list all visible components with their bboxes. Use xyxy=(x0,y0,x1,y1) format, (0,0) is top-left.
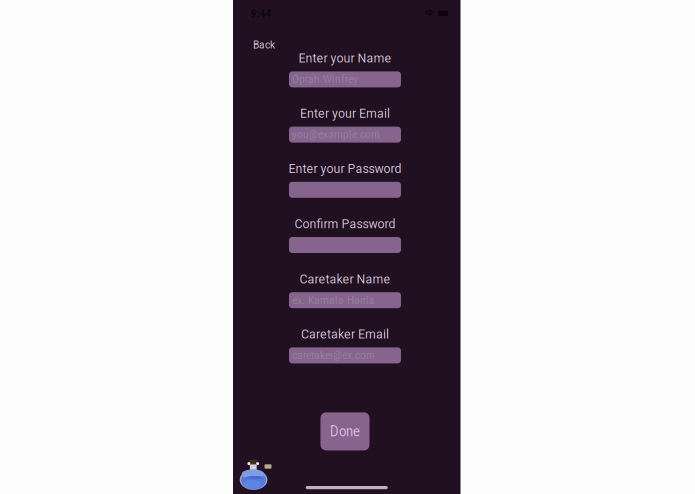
button[interactable]: Done xyxy=(320,412,369,450)
staticText: Enter your Password xyxy=(288,161,401,176)
button[interactable]: Enter your Email xyxy=(289,127,401,143)
staticText: Enter your Email xyxy=(300,106,390,121)
staticText: Caretaker Name xyxy=(299,271,390,287)
button[interactable]: Enter your Name xyxy=(289,71,401,87)
staticText: Back xyxy=(253,38,275,51)
staticText: Oprah Winfrey xyxy=(292,73,358,86)
staticText: caretaker@ex.com xyxy=(292,349,375,362)
button[interactable]: Enter your Password xyxy=(289,182,401,198)
button[interactable]: Confirm Password xyxy=(289,237,401,253)
button[interactable]: Caretaker Email xyxy=(289,347,401,363)
staticText: ex. Kamala Harris xyxy=(292,294,374,307)
staticText: 9:44 xyxy=(250,7,271,20)
button[interactable]: Back xyxy=(249,35,279,54)
staticText: Confirm Password xyxy=(294,216,395,231)
staticText: Enter your Name xyxy=(298,50,391,66)
staticText: Caretaker Email xyxy=(301,326,389,342)
staticText: Done xyxy=(330,423,360,440)
button[interactable]: Caretaker Name xyxy=(289,292,401,308)
staticText: you@example.com xyxy=(292,128,380,141)
